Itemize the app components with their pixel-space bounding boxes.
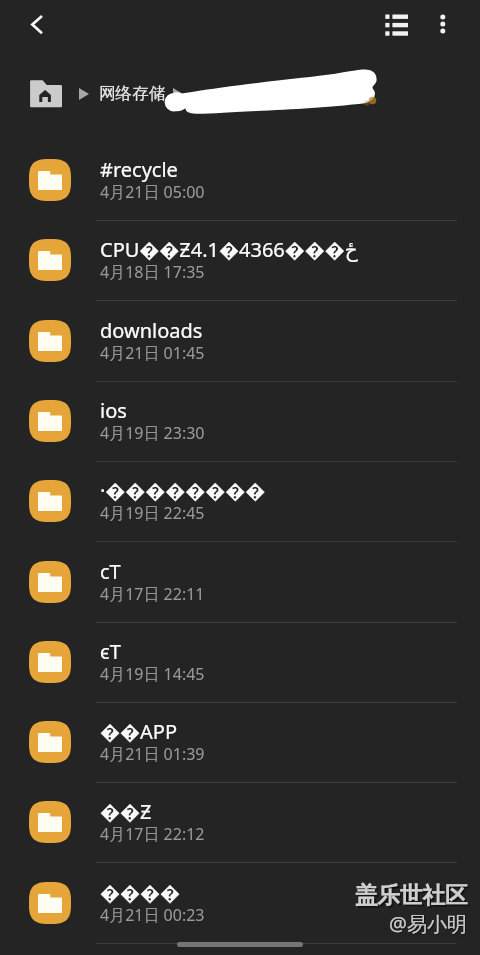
staticText: 4月19日 22:45 bbox=[100, 502, 205, 524]
staticText: 盖乐世社区 bbox=[355, 881, 468, 909]
button[interactable]: ·�������� bbox=[0, 462, 480, 542]
button[interactable]: More options bbox=[421, 1, 465, 45]
staticText: ��Ƶ bbox=[100, 798, 152, 825]
staticText: 4月18日 17:35 bbox=[100, 261, 205, 283]
staticText: 4月17日 22:12 bbox=[100, 823, 205, 845]
button[interactable]: ���� bbox=[0, 864, 480, 944]
staticText: єT bbox=[100, 638, 121, 665]
staticText: #recycle bbox=[100, 156, 178, 183]
button[interactable]: cT bbox=[0, 543, 480, 623]
staticText: 4月19日 14:45 bbox=[100, 663, 205, 685]
button[interactable]: #recycle bbox=[0, 141, 480, 221]
staticText: ��APP bbox=[100, 718, 177, 745]
staticText: @易小明 bbox=[389, 910, 467, 937]
staticText: ·�������� bbox=[100, 477, 266, 504]
button[interactable]: ��APP bbox=[0, 703, 480, 783]
staticText: 4月21日 05:00 bbox=[100, 181, 205, 203]
staticText: @易小明 bbox=[390, 911, 468, 938]
staticText: ios bbox=[100, 397, 127, 424]
staticText: 4月21日 01:45 bbox=[100, 342, 205, 364]
staticText: CPU��Ƶ4.1�4366���ځ bbox=[100, 236, 358, 263]
staticText: downloads bbox=[100, 317, 203, 344]
button[interactable]: Home bbox=[24, 74, 70, 114]
staticText: 4月19日 23:30 bbox=[100, 422, 205, 444]
button[interactable]: єT bbox=[0, 623, 480, 703]
button[interactable]: Back bbox=[12, 2, 60, 50]
button[interactable]: downloads bbox=[0, 302, 480, 382]
button[interactable]: ios bbox=[0, 382, 480, 462]
button[interactable]: ��Ƶ bbox=[0, 783, 480, 863]
button[interactable]: CPU��Ƶ4.1�4366���ځ bbox=[0, 221, 480, 301]
staticText: 4月21日 01:39 bbox=[100, 743, 205, 765]
staticText: 4月21日 00:23 bbox=[100, 904, 205, 926]
staticText: 网络存储 bbox=[99, 83, 166, 104]
staticText: 盖乐世社区 bbox=[357, 883, 470, 911]
button[interactable]: 网络存储 bbox=[99, 83, 166, 104]
staticText: cT bbox=[100, 558, 121, 585]
staticText: ���� bbox=[100, 879, 180, 906]
staticText: 4月17日 22:11 bbox=[100, 583, 205, 605]
button[interactable]: Change view bbox=[373, 1, 419, 47]
